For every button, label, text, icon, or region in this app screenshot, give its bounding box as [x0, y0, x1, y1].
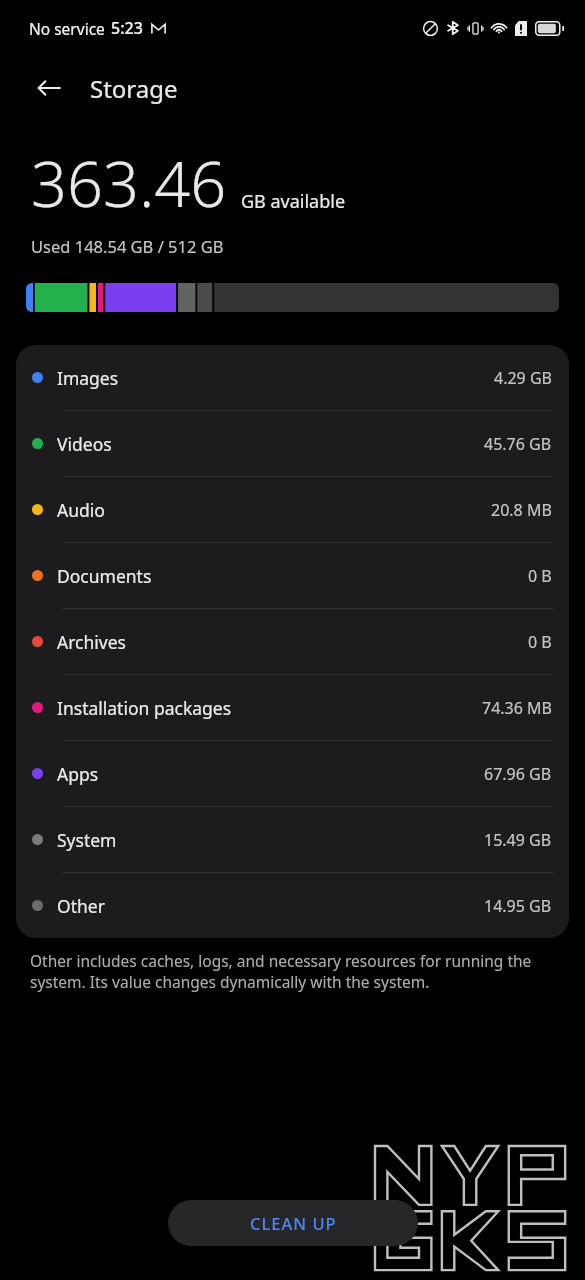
staticText: Videos: [57, 432, 112, 456]
staticText: 0 B: [528, 565, 552, 587]
staticText: Installation packages: [57, 696, 232, 720]
button[interactable]: Back: [26, 65, 72, 111]
staticText: Used 148.54 GB / 512 GB: [31, 235, 224, 257]
staticText: 20.8 MB: [491, 499, 552, 521]
staticText: Documents: [57, 564, 152, 588]
staticText: Apps: [57, 762, 99, 786]
button[interactable]: Archives: [16, 609, 569, 674]
staticText: Audio: [57, 498, 105, 522]
staticText: Other includes caches, logs, and necessa…: [30, 950, 555, 993]
staticText: 0 B: [528, 631, 552, 653]
staticText: 15.49 GB: [484, 829, 552, 851]
staticText: GB available: [241, 189, 346, 214]
staticText: Archives: [57, 630, 126, 654]
staticText: 5:23: [111, 17, 143, 39]
button[interactable]: Images: [16, 345, 569, 410]
button[interactable]: System: [16, 807, 569, 872]
staticText: No service: [29, 18, 105, 39]
staticText: 67.96 GB: [484, 763, 552, 785]
staticText: 45.76 GB: [484, 433, 552, 455]
staticText: 363.46: [31, 140, 227, 226]
button[interactable]: Other: [16, 873, 569, 938]
staticText: Other: [57, 894, 105, 918]
staticText: System: [57, 828, 117, 852]
staticText: Storage: [90, 72, 178, 105]
button[interactable]: Documents: [16, 543, 569, 608]
staticText: CLEAN UP: [250, 1212, 337, 1234]
button[interactable]: Audio: [16, 477, 569, 542]
staticText: 4.29 GB: [494, 367, 552, 389]
staticText: Images: [57, 366, 119, 390]
button[interactable]: Installation packages: [16, 675, 569, 740]
button[interactable]: Videos: [16, 411, 569, 476]
staticText: 14.95 GB: [484, 895, 552, 917]
staticText: 74.36 MB: [482, 697, 552, 719]
button[interactable]: Apps: [16, 741, 569, 806]
button[interactable]: CLEAN UP: [168, 1200, 418, 1246]
